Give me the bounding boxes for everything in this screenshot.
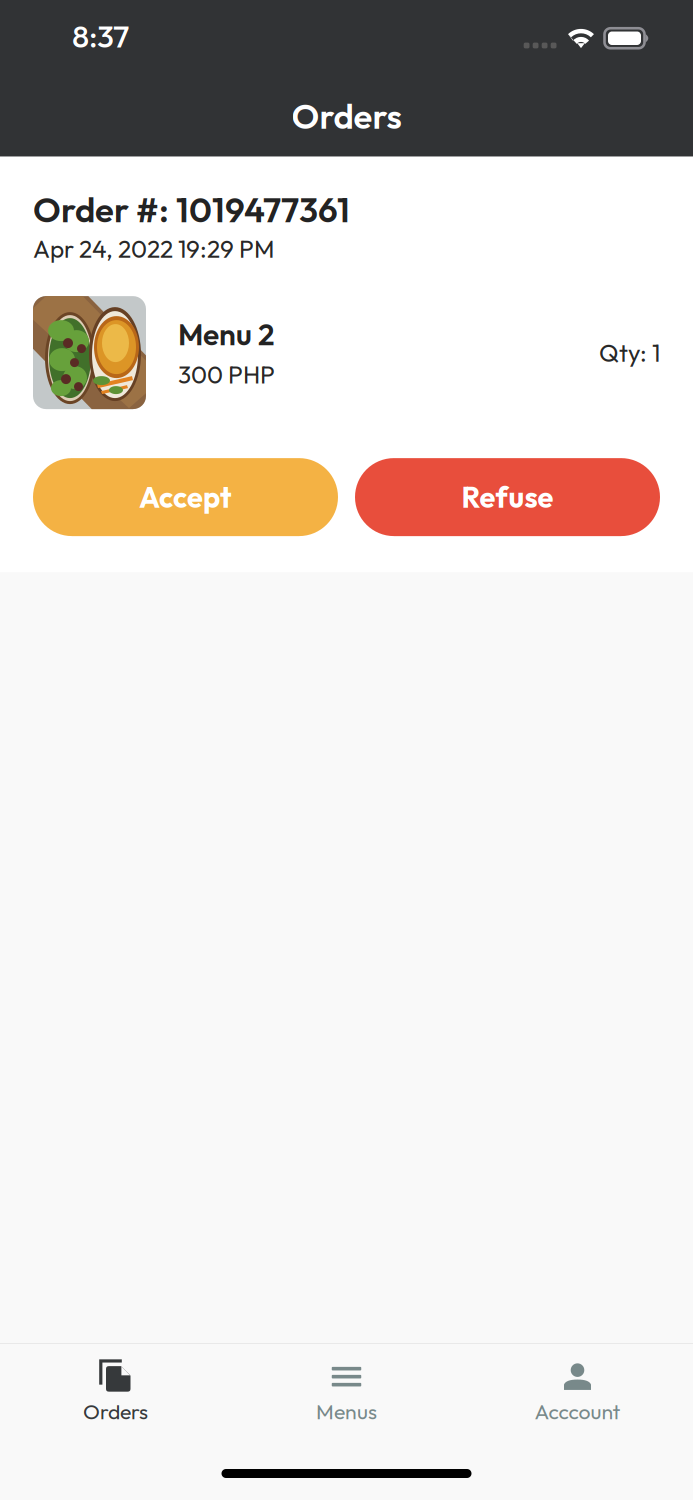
staticText: Order #: 1019477361 [33, 188, 350, 231]
staticText: Menus [316, 1398, 377, 1425]
staticText: Refuse [461, 479, 553, 515]
button[interactable]: Menus [231, 1347, 462, 1435]
staticText: Orders [291, 94, 401, 138]
staticText: Accept [139, 479, 232, 515]
button[interactable]: Accept [33, 458, 338, 536]
button[interactable]: Refuse [355, 458, 660, 536]
staticText: 300 PHP [178, 359, 275, 390]
staticText: 8:37 [72, 16, 129, 56]
button[interactable]: Acccount [462, 1347, 693, 1435]
staticText: Qty: 1 [599, 337, 660, 368]
staticText: Apr 24, 2022 19:29 PM [33, 233, 274, 264]
staticText: Acccount [534, 1398, 620, 1425]
staticText: Orders [83, 1398, 148, 1425]
staticText: Menu 2 [178, 315, 275, 353]
button[interactable]: Orders [0, 1347, 231, 1435]
